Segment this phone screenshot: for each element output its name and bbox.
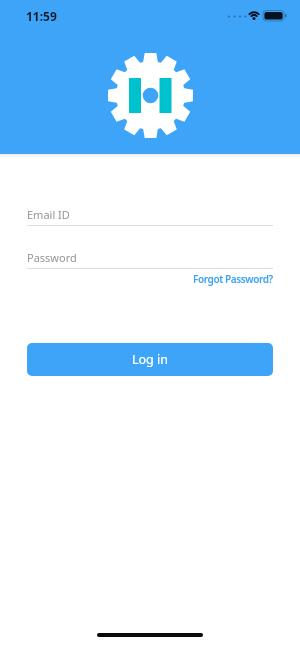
- button[interactable]: Email ID: [27, 202, 273, 226]
- button[interactable]: Password: [27, 245, 273, 269]
- staticText: Forgot Password?: [193, 272, 273, 286]
- staticText: Log in: [132, 351, 169, 368]
- staticText: Email ID: [27, 207, 70, 222]
- staticText: 11:59: [26, 8, 57, 24]
- button[interactable]: Forgot Password?: [193, 272, 273, 286]
- staticText: Password: [27, 250, 77, 265]
- button[interactable]: Log in: [27, 343, 273, 376]
